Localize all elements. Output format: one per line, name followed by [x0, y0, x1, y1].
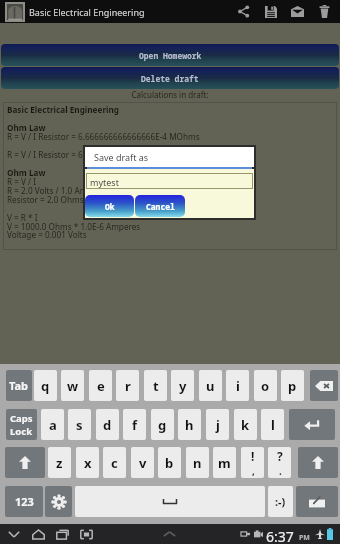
staticText: x — [84, 454, 92, 472]
staticText: m — [218, 454, 231, 472]
staticText: Tab — [9, 378, 29, 393]
button[interactable]: ? — [268, 447, 291, 478]
staticText: k — [241, 416, 250, 434]
button[interactable]: k — [234, 409, 257, 440]
staticText: mytest — [90, 176, 119, 188]
button[interactable]: n — [186, 447, 209, 478]
staticText: Cancel — [146, 201, 175, 212]
button[interactable]: g — [151, 409, 174, 440]
button[interactable]: w — [61, 370, 84, 401]
button[interactable]: Home — [28, 524, 49, 544]
staticText: Open Homework — [139, 50, 202, 61]
staticText: Basic Electrical Engineering — [7, 104, 119, 115]
button[interactable]: 123 — [5, 486, 43, 517]
button[interactable]: b — [158, 447, 181, 478]
button[interactable]: u — [199, 370, 222, 401]
staticText: b — [165, 454, 174, 472]
button[interactable]: r — [116, 370, 139, 401]
staticText: y — [179, 377, 187, 395]
button[interactable]: h — [178, 409, 201, 440]
button[interactable]: d — [96, 409, 119, 440]
staticText: 6:37 — [266, 527, 294, 544]
button[interactable]: Shift right — [298, 447, 338, 478]
staticText: Ohm Law — [7, 122, 46, 133]
button[interactable]: Enter — [289, 409, 335, 440]
staticText: c — [111, 454, 118, 472]
staticText: e — [97, 377, 105, 395]
button[interactable]: Open Homework — [1, 44, 339, 66]
button[interactable]: j — [206, 409, 229, 440]
staticText: w — [67, 377, 79, 395]
button[interactable]: i — [226, 370, 249, 401]
button[interactable]: Screenshot — [76, 524, 97, 544]
staticText: g — [158, 416, 167, 434]
staticText: d — [103, 416, 112, 434]
staticText: z — [56, 454, 63, 472]
staticText: V = R * I — [7, 212, 38, 223]
staticText: v — [139, 454, 147, 472]
button[interactable]: v — [131, 447, 154, 478]
button[interactable]: Attach — [296, 486, 338, 517]
button[interactable]: Share — [230, 0, 257, 23]
staticText: Ok — [105, 201, 115, 212]
staticText: Save draft as — [94, 151, 149, 163]
button[interactable]: o — [254, 370, 277, 401]
staticText: h — [185, 416, 194, 434]
staticText: Voltage = 0.001 Volts — [7, 229, 87, 240]
button[interactable]: x — [76, 447, 99, 478]
button[interactable]: Recents — [52, 524, 73, 544]
staticText: ! — [251, 448, 255, 464]
button[interactable]: Back — [3, 524, 24, 544]
button[interactable]: Email — [284, 0, 311, 23]
button[interactable]: m — [213, 447, 236, 478]
button[interactable]: Shift — [5, 447, 45, 478]
staticText: , — [252, 464, 255, 478]
button[interactable]: Backspace — [310, 370, 338, 401]
button[interactable]: p — [281, 370, 304, 401]
staticText: r — [125, 377, 131, 395]
staticText: 123 — [15, 494, 34, 509]
button[interactable]: Delete draft — [1, 67, 339, 89]
staticText: q — [41, 377, 50, 395]
button[interactable]: Caps — [6, 409, 37, 440]
staticText: Caps — [10, 412, 33, 425]
button[interactable]: e — [89, 370, 112, 401]
button[interactable]: y — [171, 370, 194, 401]
staticText: Lock — [10, 425, 33, 438]
staticText: s — [76, 416, 83, 434]
button[interactable]: Save — [257, 0, 284, 23]
staticText: Calculations in draft: — [0, 89, 340, 100]
button[interactable]: z — [48, 447, 71, 478]
staticText: t — [153, 377, 159, 395]
button[interactable]: :-) — [268, 486, 293, 517]
button[interactable]: Expand — [159, 524, 180, 544]
button[interactable]: Ok — [85, 195, 134, 217]
button[interactable]: Cancel — [135, 195, 185, 217]
button[interactable]: f — [123, 409, 146, 440]
button[interactable]: Space — [75, 486, 265, 517]
staticText: p — [288, 377, 297, 395]
staticText: :-) — [275, 494, 286, 509]
button[interactable]: ! — [241, 447, 264, 478]
staticText: i — [236, 377, 240, 395]
button[interactable]: a — [41, 409, 64, 440]
button[interactable]: Tab — [6, 370, 32, 401]
button[interactable]: l — [261, 409, 284, 440]
staticText: n — [193, 454, 202, 472]
button[interactable]: Settings — [45, 486, 72, 517]
button[interactable]: c — [103, 447, 126, 478]
button[interactable]: q — [34, 370, 57, 401]
staticText: ? — [277, 448, 283, 464]
staticText: j — [216, 416, 220, 434]
staticText: a — [49, 416, 57, 434]
staticText: Resistor = 2.0 Ohms — [7, 194, 84, 205]
staticText: . — [279, 464, 282, 478]
button[interactable]: s — [68, 409, 91, 440]
staticText: Ohm Law — [7, 167, 46, 178]
button[interactable]: t — [144, 370, 167, 401]
staticText: u — [206, 377, 215, 395]
button[interactable]: Delete — [311, 0, 338, 23]
staticText: Basic Electrical Engineering — [29, 6, 145, 18]
staticText: R = V / I Resistor = 6.666666666666666E-… — [7, 131, 200, 142]
staticText: PM — [299, 533, 310, 543]
